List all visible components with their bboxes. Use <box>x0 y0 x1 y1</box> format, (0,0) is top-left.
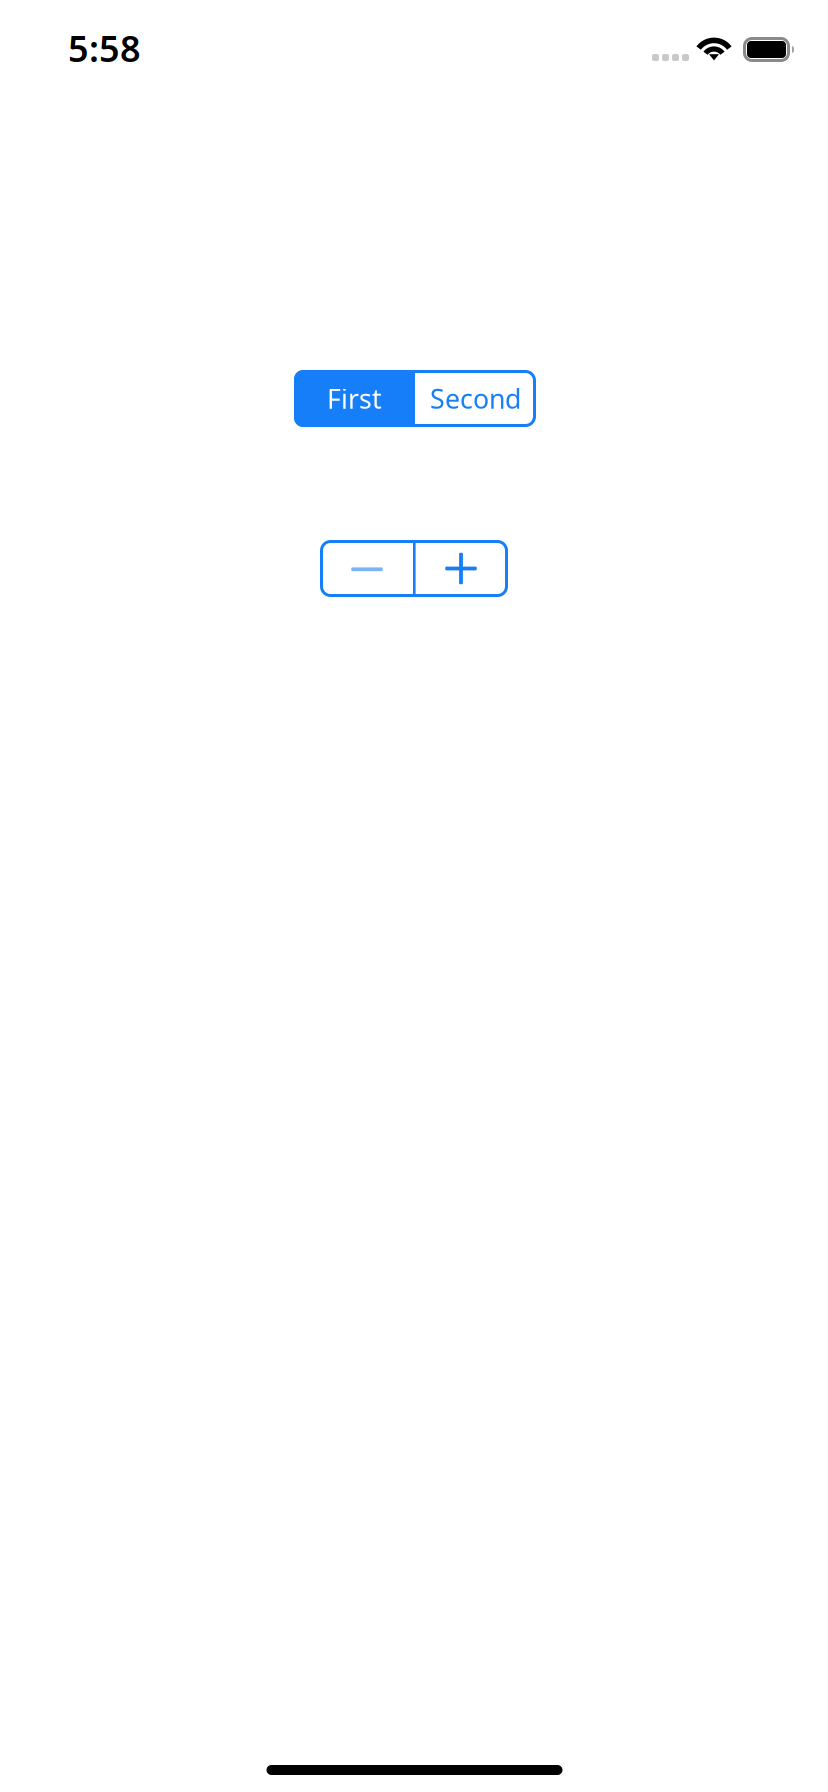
button[interactable]: First <box>294 370 415 427</box>
staticText: 5:58 <box>68 24 141 72</box>
staticText: First <box>327 381 382 416</box>
staticText: Second <box>430 381 521 416</box>
button[interactable]: Increase <box>414 540 508 597</box>
button[interactable]: Second <box>415 370 536 427</box>
button[interactable]: Decrease <box>320 540 414 597</box>
